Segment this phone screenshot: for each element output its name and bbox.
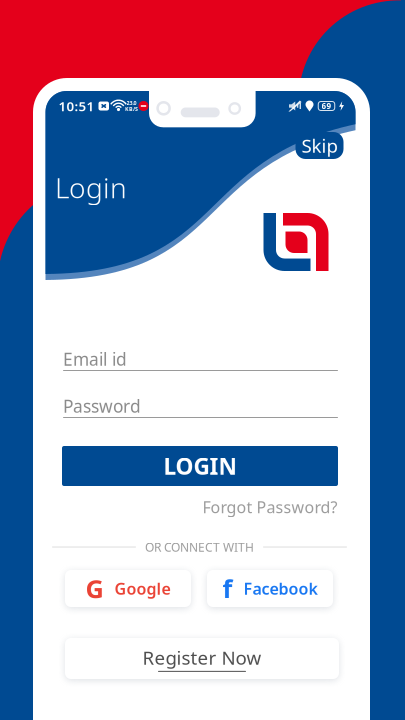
staticText: Password [63, 394, 141, 417]
staticText: 10:51 [58, 97, 94, 115]
staticText: G [85, 572, 103, 605]
button[interactable]: G [65, 570, 191, 607]
staticText: Login [55, 169, 127, 206]
staticText: Email id [63, 347, 127, 370]
staticText: Google [114, 578, 170, 599]
staticText: Skip [301, 133, 337, 158]
staticText: Register Now [142, 645, 261, 670]
button[interactable]: Register Now [65, 638, 339, 679]
button[interactable]: f [207, 570, 333, 607]
staticText: f [222, 572, 232, 605]
button[interactable]: LOGIN [62, 446, 338, 486]
staticText: 23.0 [126, 99, 136, 106]
button[interactable]: Forgot Password? [197, 498, 337, 516]
staticText: Facebook [243, 578, 317, 599]
staticText: KB/S [125, 105, 138, 113]
staticText: OR CONNECT WITH [145, 539, 254, 555]
staticText: 69 [321, 101, 331, 111]
staticText: Forgot Password? [202, 496, 337, 518]
staticText: LOGIN [163, 451, 236, 481]
button[interactable]: Skip [295, 132, 343, 159]
